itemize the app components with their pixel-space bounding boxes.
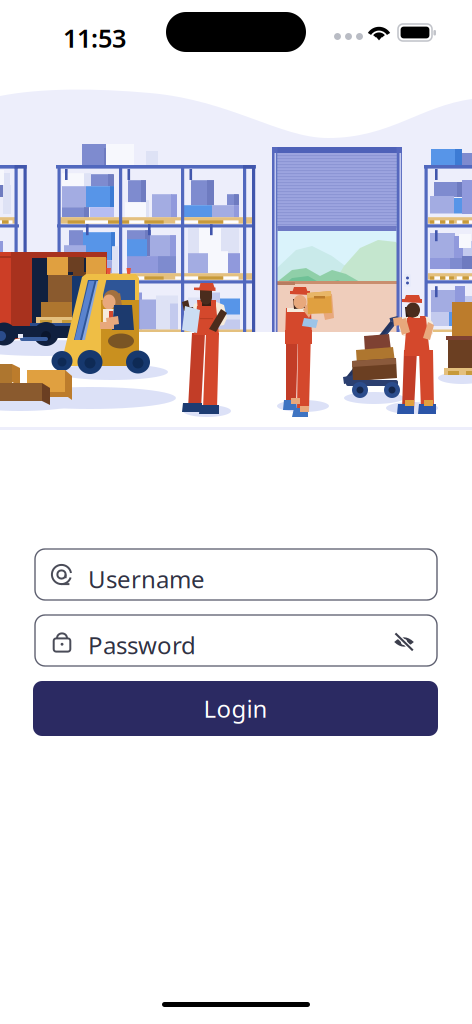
- button[interactable]: Username: [35, 549, 437, 600]
- staticText: Username: [88, 563, 205, 595]
- staticText: 11:53: [63, 21, 126, 55]
- staticText: Password: [88, 629, 196, 661]
- staticText: Login: [203, 693, 267, 724]
- button[interactable]: Login: [33, 681, 438, 736]
- button[interactable]: Password: [35, 615, 437, 666]
